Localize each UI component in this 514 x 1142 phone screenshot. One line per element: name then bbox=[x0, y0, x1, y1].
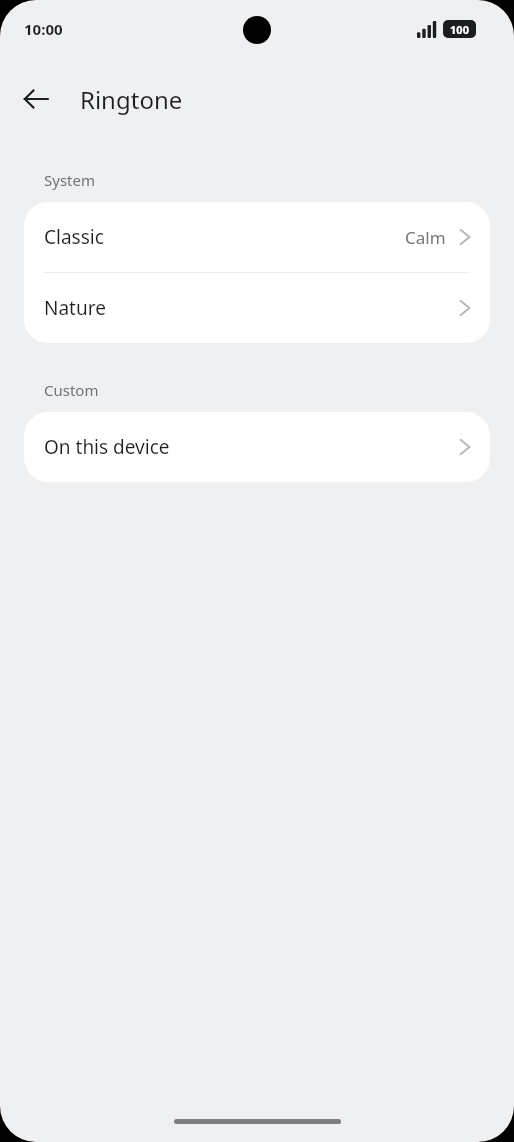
staticText: 100 bbox=[450, 22, 469, 37]
button[interactable]: Back bbox=[10, 73, 62, 125]
staticText: Classic bbox=[44, 224, 104, 250]
button[interactable]: Nature bbox=[24, 273, 490, 343]
staticText: On this device bbox=[44, 434, 170, 460]
staticText: Custom bbox=[44, 380, 99, 400]
button[interactable]: Classic bbox=[24, 202, 490, 272]
staticText: Nature bbox=[44, 295, 106, 321]
staticText: Ringtone bbox=[80, 83, 183, 116]
staticText: Calm bbox=[405, 226, 446, 249]
staticText: System bbox=[44, 170, 95, 190]
button[interactable]: On this device bbox=[24, 412, 490, 482]
staticText: 10:00 bbox=[24, 19, 63, 39]
